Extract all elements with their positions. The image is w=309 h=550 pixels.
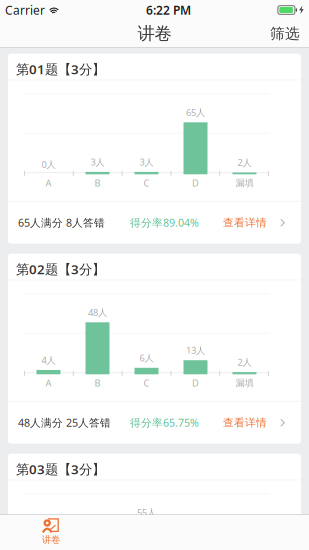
staticText: A <box>45 177 51 189</box>
staticText: 6:22 PM <box>146 2 191 18</box>
staticText: 6人 <box>139 352 153 364</box>
staticText: 第03题【3分】 <box>16 460 105 478</box>
staticText: B <box>94 177 100 189</box>
staticText: 13人 <box>186 344 205 356</box>
button[interactable]: 讲卷 <box>20 515 82 550</box>
staticText: D <box>192 377 199 389</box>
staticText: 漏填 <box>235 177 253 189</box>
staticText: C <box>143 377 149 389</box>
staticText: 第01题【3分】 <box>16 60 105 78</box>
button[interactable]: 48人满分 25人答错 <box>8 402 301 444</box>
staticText: 3人 <box>139 156 153 168</box>
staticText: 漏填 <box>235 377 253 389</box>
staticText: 得分率65.75% <box>130 415 199 430</box>
button[interactable]: 65人满分 8人答错 <box>8 202 301 244</box>
staticText: 65人 <box>186 106 205 118</box>
staticText: 讲卷 <box>42 534 60 545</box>
staticText: 得分率89.04% <box>130 215 199 230</box>
staticText: 查看详情 <box>223 216 267 229</box>
staticText: A <box>45 377 51 389</box>
staticText: 筛选 <box>270 24 300 42</box>
staticText: B <box>94 377 100 389</box>
staticText: 0人 <box>41 158 55 170</box>
staticText: Carrier <box>5 2 45 18</box>
staticText: C <box>143 177 149 189</box>
staticText: 讲卷 <box>137 23 171 44</box>
staticText: 2人 <box>237 356 251 368</box>
staticText: 2人 <box>237 156 251 169</box>
staticText: 查看详情 <box>223 416 267 429</box>
staticText: 48人满分 25人答错 <box>18 415 111 430</box>
staticText: 4人 <box>41 354 55 366</box>
staticText: 55人 <box>137 506 156 518</box>
staticText: 65人满分 8人答错 <box>18 215 105 230</box>
button[interactable]: 筛选 <box>261 20 309 47</box>
staticText: 3人 <box>90 156 104 168</box>
staticText: D <box>192 177 199 189</box>
staticText: 第02题【3分】 <box>16 260 105 278</box>
staticText: 48人 <box>88 306 107 318</box>
